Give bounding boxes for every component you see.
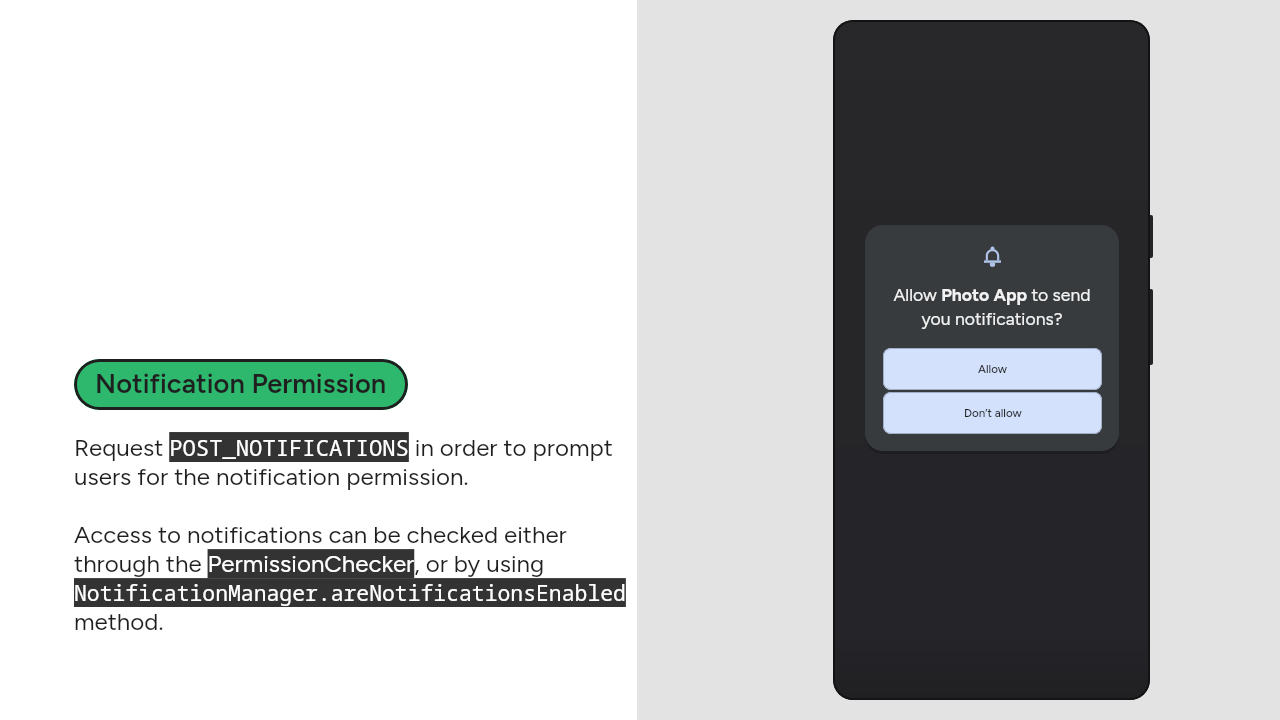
staticText: Request POST_NOTIFICATIONS in order to p…: [74, 432, 626, 636]
staticText: Allow Photo App to send you notification…: [887, 284, 1097, 329]
other: Notifications: [984, 246, 1001, 267]
button[interactable]: Allow: [883, 348, 1102, 390]
button[interactable]: Don’t allow: [883, 392, 1102, 434]
staticText: Don’t allow: [964, 406, 1022, 420]
staticText: Allow: [978, 362, 1008, 376]
button[interactable]: Notification Permission: [74, 359, 408, 410]
staticText: Notification Permission: [95, 367, 387, 400]
